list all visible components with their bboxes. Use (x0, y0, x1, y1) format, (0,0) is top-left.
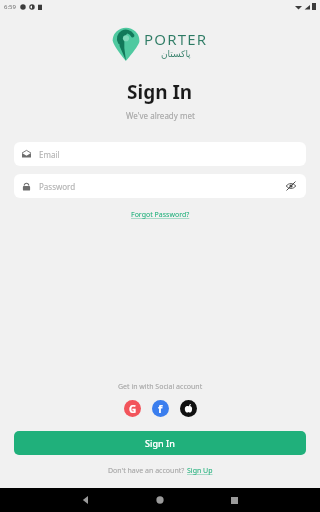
staticText: Email (39, 149, 60, 160)
staticText: Password (39, 181, 76, 192)
staticText: f (158, 401, 163, 416)
staticText: پاکستان (161, 49, 191, 59)
button[interactable]: Sign in with Apple (180, 400, 197, 417)
button[interactable]: Password (14, 174, 306, 198)
button[interactable]: Don't have an account? (104, 464, 217, 478)
button[interactable]: Sign in with Facebook (152, 400, 169, 417)
staticText: PORTER (144, 29, 208, 49)
staticText: Sign In (127, 79, 193, 105)
staticText: G (129, 402, 137, 416)
button[interactable]: Sign in with Google (124, 400, 141, 417)
staticText: Sign Up (187, 466, 213, 476)
button[interactable]: Forgot Password? (125, 208, 196, 222)
staticText: Get in with Social account (118, 382, 203, 392)
button[interactable]: Recents (197, 488, 271, 512)
staticText: Don't have an account? (108, 466, 187, 476)
button[interactable]: Show password (284, 179, 298, 193)
other: Email (22, 150, 31, 159)
button[interactable]: Home (123, 488, 197, 512)
button[interactable]: Email (14, 142, 306, 166)
button[interactable]: Sign In (14, 431, 306, 455)
other: Password (22, 182, 31, 191)
staticText: Sign In (145, 437, 175, 449)
button[interactable]: Back (49, 488, 123, 512)
staticText: Forgot Password? (131, 210, 190, 220)
staticText: 6:59 (4, 3, 16, 11)
staticText: We've already met (126, 110, 195, 121)
